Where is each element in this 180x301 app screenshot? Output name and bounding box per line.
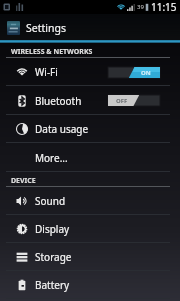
staticText: Sound: [35, 194, 66, 208]
staticText: ON: [141, 69, 151, 77]
staticText: Storage: [35, 250, 72, 264]
button[interactable]: Battery: [0, 271, 180, 299]
staticText: WIRELESS & NETWORKS: [11, 47, 93, 57]
button[interactable]: Switch off: [108, 95, 160, 106]
staticText: Wi-Fi: [35, 65, 58, 79]
staticText: 11:15: [151, 0, 177, 14]
staticText: Bluetooth: [35, 94, 82, 108]
staticText: 39: [137, 3, 144, 11]
staticText: Data usage: [35, 122, 89, 136]
staticText: OFF: [116, 97, 128, 105]
staticText: More...: [35, 151, 68, 165]
button[interactable]: Sound: [0, 187, 180, 215]
button[interactable]: More...: [0, 143, 180, 172]
staticText: DEVICE: [11, 176, 36, 186]
staticText: Battery: [35, 278, 70, 292]
staticText: Settings: [26, 21, 66, 35]
button[interactable]: Storage: [0, 243, 180, 271]
button[interactable]: Switch on: [108, 67, 160, 78]
button[interactable]: Bluetooth: [0, 86, 180, 115]
button[interactable]: Data usage: [0, 115, 180, 143]
staticText: Display: [35, 222, 70, 236]
button[interactable]: Display: [0, 215, 180, 243]
button[interactable]: Wi-Fi: [0, 58, 180, 86]
